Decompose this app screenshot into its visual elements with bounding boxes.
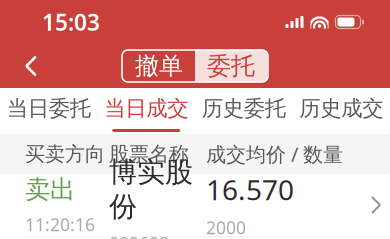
button[interactable]: 委托 — [195, 50, 267, 82]
staticText: 当日委托 — [7, 95, 91, 122]
staticText: 买卖方向 — [25, 142, 105, 166]
staticText: 11:20:16 — [25, 213, 95, 236]
staticText: 委托 — [207, 51, 255, 81]
staticText: 成交均价 / 数量 — [206, 141, 343, 167]
staticText: 卖出 — [25, 174, 75, 205]
staticText: 历史委托 — [202, 95, 286, 122]
button[interactable]: 撤单 — [123, 50, 195, 82]
button[interactable]: 卖出 — [0, 174, 390, 237]
button[interactable]: 历史成交 — [292, 88, 390, 134]
button[interactable]: 历史委托 — [195, 88, 292, 134]
staticText: 历史成交 — [299, 95, 383, 122]
staticText: 股票名称 — [109, 142, 189, 166]
button[interactable]: 当日成交 — [97, 88, 195, 134]
staticText: 当日成交 — [104, 95, 188, 122]
button[interactable]: 当日委托 — [0, 88, 97, 134]
staticText: 002698 — [109, 232, 169, 239]
staticText: 博实股份 — [109, 155, 193, 224]
staticText: 2000 — [206, 216, 246, 239]
staticText: 16.570 — [206, 171, 294, 208]
staticText: 撤单 — [135, 51, 183, 81]
staticText: 15:03 — [42, 7, 100, 37]
button[interactable]: Back — [9, 44, 53, 88]
